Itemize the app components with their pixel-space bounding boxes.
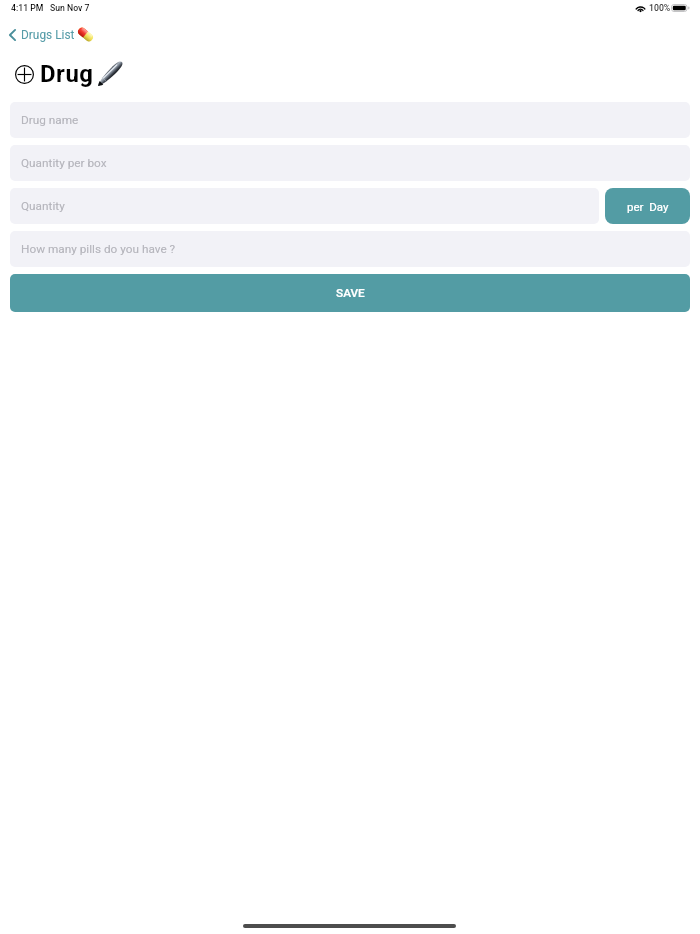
button[interactable]: Quantity per box [10,145,690,181]
staticText: 100% [649,3,671,13]
button[interactable]: How many pills do you have ? [10,231,690,267]
button[interactable]: Drugs List [0,27,100,42]
staticText: Quantity [21,199,65,213]
staticText: Drugs List [21,28,75,42]
button[interactable]: Drug name [10,102,690,138]
other: Wi-Fi connected [635,5,646,12]
staticText: 4:11 PM [11,3,44,13]
staticText: per Day [627,200,669,213]
staticText: Drug [40,60,94,88]
staticText: How many pills do you have ? [21,242,176,256]
button[interactable]: per Day [605,188,690,224]
button[interactable]: SAVE [10,274,690,312]
staticText: Drug name [21,113,79,127]
button[interactable]: Add drug [15,65,34,84]
other: Battery 100 percent [671,4,690,12]
staticText: Sun Nov 7 [50,3,90,13]
staticText: SAVE [336,286,365,300]
button[interactable]: Quantity [10,188,599,224]
staticText: Quantity per box [21,156,107,170]
